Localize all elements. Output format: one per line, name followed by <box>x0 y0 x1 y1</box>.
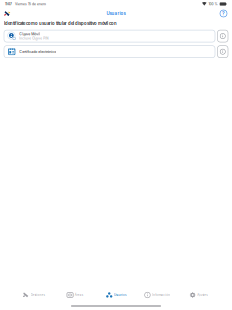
staticText: Certificado electrónico <box>19 50 56 54</box>
button[interactable]: Áreas <box>54 288 95 302</box>
staticText: Viernes 15 de enero <box>12 2 46 6</box>
staticText: Cl@ve Móvil <box>19 32 40 36</box>
button[interactable]: Más información sobre Cl@ve Móvil <box>217 30 228 42</box>
staticText: Incluye Cl@ve PIN <box>19 37 48 40</box>
button[interactable]: Usuarios <box>95 288 137 302</box>
button[interactable]: Ayuda <box>219 9 228 18</box>
button[interactable]: Cl@ve Móvil <box>4 30 215 42</box>
staticText: 11:07 <box>5 2 12 6</box>
button[interactable]: Más información sobre Certificado electr… <box>217 46 228 58</box>
staticText: Ajustes <box>197 293 207 297</box>
staticText: ? <box>222 11 225 16</box>
staticText: Usuarios <box>106 11 125 16</box>
button[interactable]: Gestiones <box>13 288 54 302</box>
staticText: Áreas <box>75 293 83 297</box>
button[interactable]: Certificado electrónico <box>4 46 215 58</box>
staticText: Usuarios <box>114 293 126 297</box>
staticText: 100 % <box>207 2 220 6</box>
button[interactable]: Información <box>137 288 178 302</box>
staticText: Gestiones <box>31 293 45 297</box>
staticText: Identifícate como usuario titular del di… <box>4 21 117 26</box>
staticText: Información <box>152 293 170 297</box>
button[interactable]: Ajustes <box>178 288 219 302</box>
